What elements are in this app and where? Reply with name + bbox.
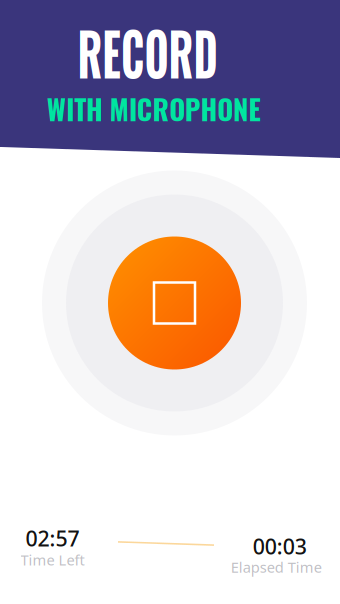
staticText: 00:03 <box>253 532 307 560</box>
button[interactable]: Stop recording <box>108 236 241 369</box>
staticText: Elapsed Time <box>231 557 322 577</box>
staticText: WITH MICROPHONE <box>44 88 263 129</box>
staticText: Time Left <box>20 550 84 570</box>
staticText: RECORD <box>46 7 249 96</box>
staticText: 02:57 <box>26 524 80 552</box>
